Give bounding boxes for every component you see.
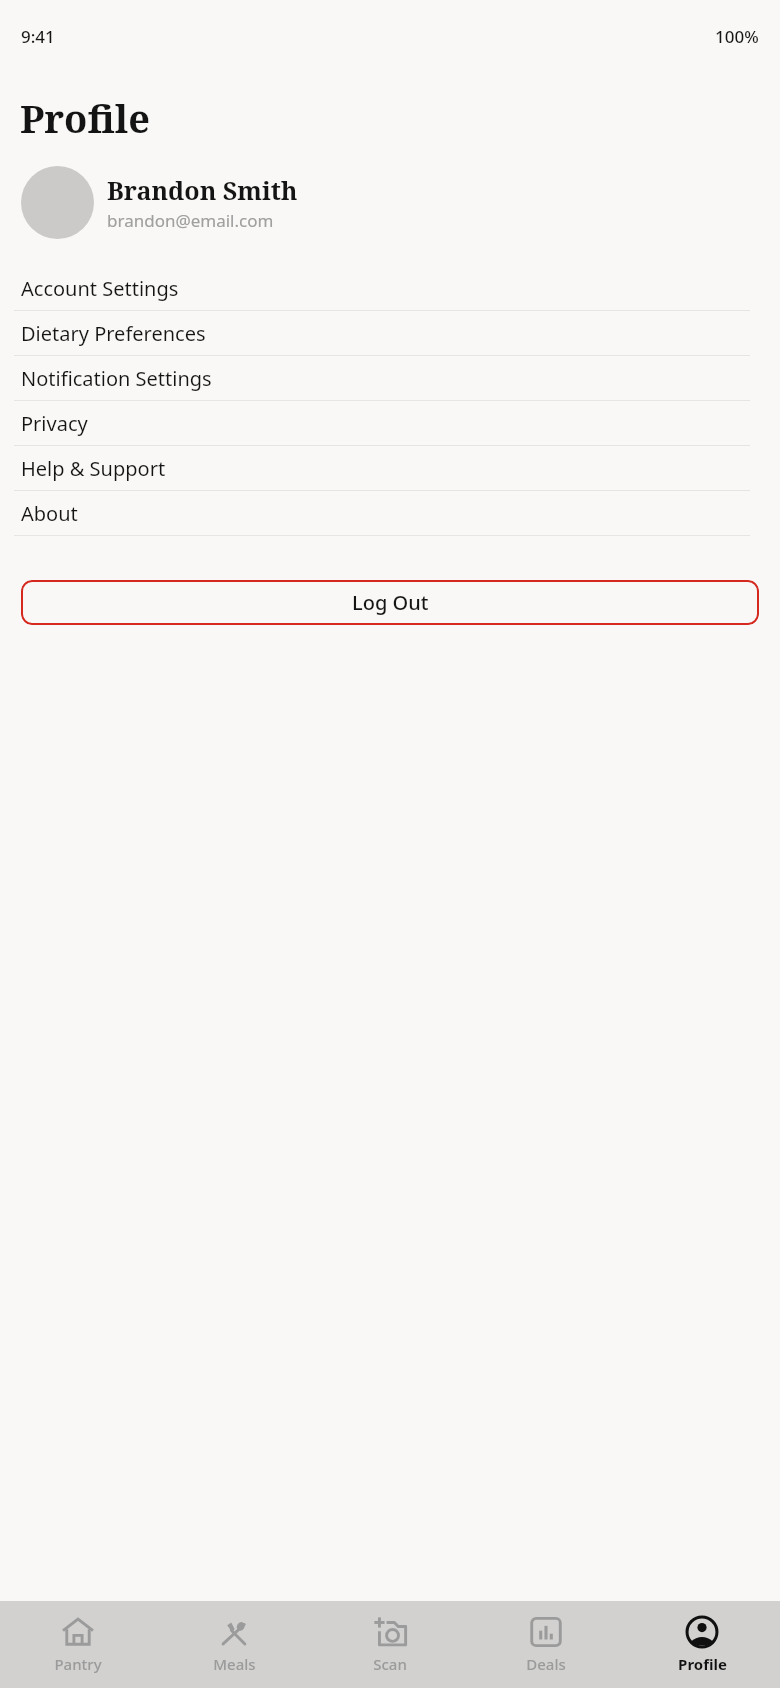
button[interactable]: Help & Support bbox=[0, 446, 780, 491]
button[interactable]: Deals bbox=[468, 1601, 624, 1688]
staticText: Help & Support bbox=[21, 455, 166, 482]
staticText: Account Settings bbox=[21, 275, 179, 302]
staticText: Log Out bbox=[352, 589, 429, 616]
button[interactable]: About bbox=[0, 491, 780, 536]
staticText: Profile bbox=[20, 92, 150, 144]
staticText: Privacy bbox=[21, 410, 88, 437]
button[interactable]: Scan bbox=[312, 1601, 468, 1688]
staticText: Meals bbox=[213, 1654, 256, 1674]
staticText: Dietary Preferences bbox=[21, 320, 206, 347]
staticText: brandon@email.com bbox=[107, 209, 274, 232]
button[interactable]: Notification Settings bbox=[0, 356, 780, 401]
staticText: 100% bbox=[715, 25, 759, 48]
staticText: 9:41 bbox=[21, 25, 55, 48]
staticText: About bbox=[21, 500, 78, 527]
button[interactable]: Privacy bbox=[0, 401, 780, 446]
staticText: Profile bbox=[678, 1654, 727, 1674]
button[interactable]: Log Out bbox=[21, 580, 759, 625]
staticText: Deals bbox=[526, 1654, 566, 1674]
staticText: Notification Settings bbox=[21, 365, 212, 392]
staticText: Brandon Smith bbox=[107, 173, 298, 207]
button[interactable]: Dietary Preferences bbox=[0, 311, 780, 356]
button[interactable]: Profile bbox=[624, 1601, 780, 1688]
button[interactable]: Account Settings bbox=[0, 266, 780, 311]
button[interactable]: Pantry bbox=[0, 1601, 156, 1688]
staticText: Pantry bbox=[54, 1654, 102, 1674]
button[interactable]: Meals bbox=[156, 1601, 312, 1688]
staticText: Scan bbox=[373, 1654, 407, 1674]
